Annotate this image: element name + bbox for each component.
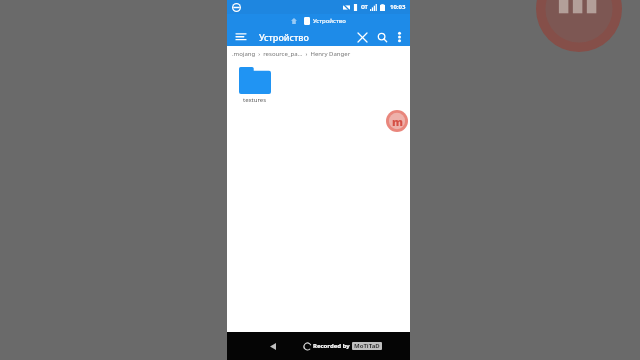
button[interactable]: Close — [353, 28, 371, 46]
staticText: Recorded by — [313, 342, 350, 350]
staticText: m — [392, 114, 403, 129]
button[interactable]: Устройство — [259, 31, 309, 43]
staticText: textures — [243, 96, 267, 104]
button[interactable]: Search — [373, 28, 391, 46]
staticText: MoTiTaD — [354, 342, 380, 350]
button[interactable]: Back — [265, 338, 281, 354]
button[interactable]: textures — [233, 64, 277, 107]
staticText: 10:03 — [390, 3, 406, 11]
button[interactable]: Menu — [233, 29, 249, 45]
staticText: Устройство — [313, 17, 346, 25]
staticText: OT — [361, 4, 368, 11]
button[interactable]: .mojang › resource_pa... › Henry Danger — [232, 50, 351, 58]
button[interactable]: More options — [392, 28, 407, 46]
